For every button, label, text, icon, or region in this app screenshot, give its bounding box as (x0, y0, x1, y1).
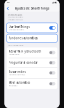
staticText: Funciones automáticas (9, 36, 38, 40)
button[interactable]: Atrás (6, 6, 10, 11)
staticText: compatibles de tu hogar. (7, 19, 22, 20)
staticText: Usar SmartThings (9, 25, 30, 29)
button[interactable]: Activar Wi‑Fi y Bluetooth (7, 47, 57, 58)
button[interactable]: Funciones automáticas (7, 34, 57, 42)
staticText: Smart View y Smart Things (9, 74, 26, 76)
staticText: Activar Wi‑Fi y Bluetooth (9, 50, 42, 53)
staticText: Activar automáticamente (7, 45, 23, 46)
button[interactable]: Buscar redes (7, 68, 57, 78)
staticText: Wi‑Fi automática (9, 85, 18, 87)
staticText: automáticamente (9, 54, 20, 55)
button[interactable]: Preguntar al conectar (7, 58, 57, 67)
button[interactable]: Usar SmartThings (7, 23, 57, 33)
staticText: Servicios vinculados (7, 14, 22, 16)
staticText: Preguntar al conectar (9, 61, 38, 64)
staticText: Conecta los dispositivos (7, 16, 23, 18)
staticText: Ajustes de SmartThings (15, 7, 49, 10)
staticText: Controla tus dispositivos (9, 29, 25, 31)
staticText: Móvil automático (9, 81, 31, 84)
staticText: Buscar redes (9, 70, 26, 74)
staticText: 9:41 (7, 2, 10, 3)
button[interactable]: Móvil automático (7, 78, 57, 89)
